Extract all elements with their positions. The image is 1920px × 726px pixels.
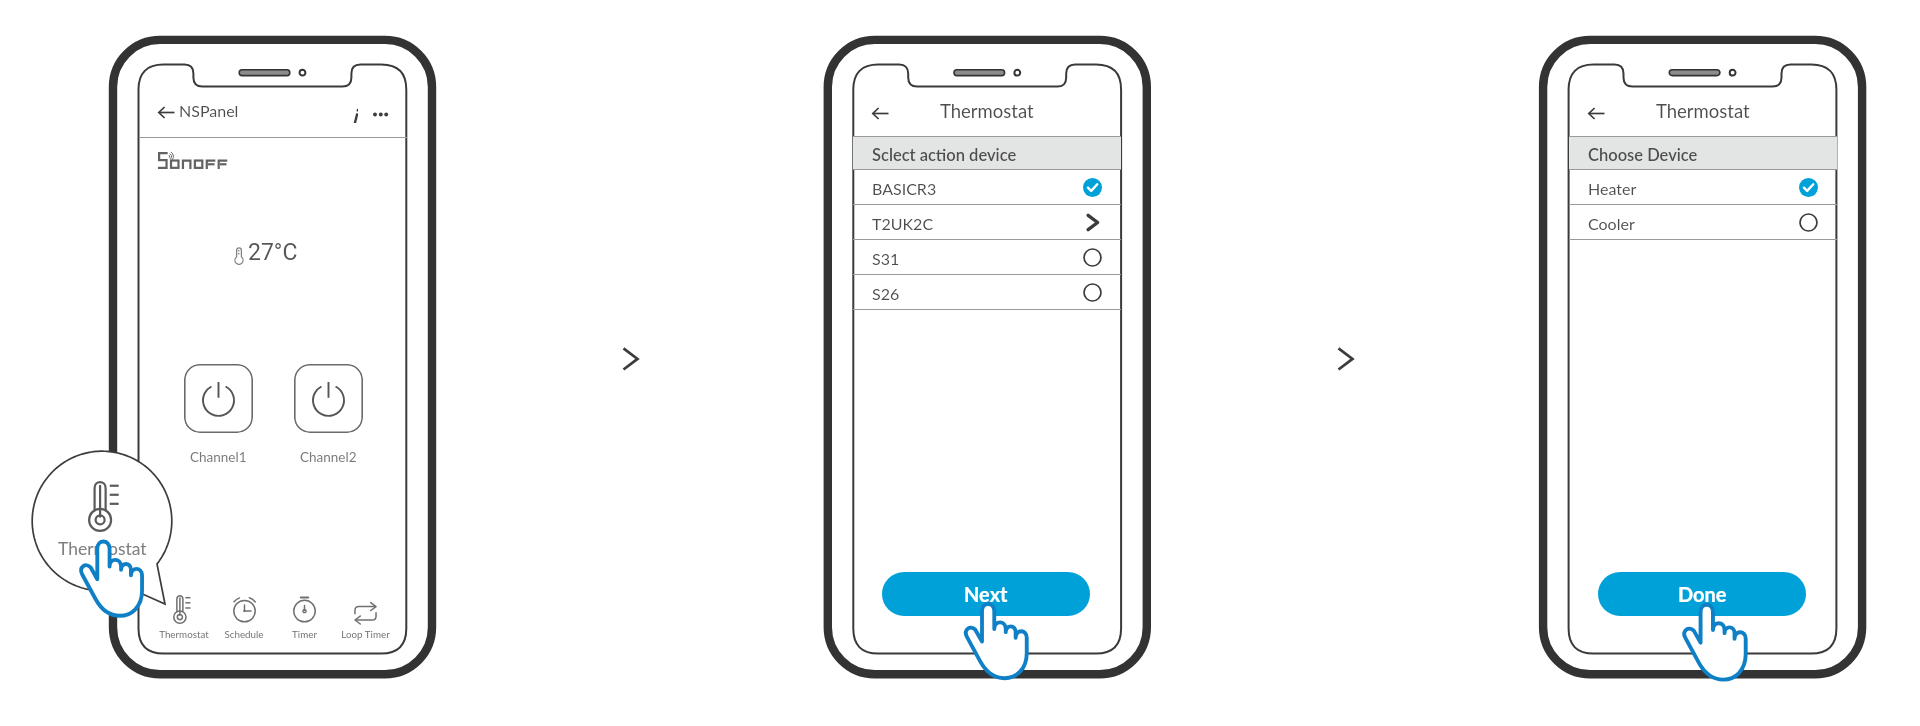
staticText: Sclect action device xyxy=(872,145,1017,165)
button[interactable]: Thermostat xyxy=(32,451,172,591)
staticText: Timer xyxy=(292,628,317,640)
button[interactable]: Timer xyxy=(274,595,335,651)
staticText: Thermostat xyxy=(159,628,209,640)
staticText: S26 xyxy=(872,284,900,303)
staticText: 27°C xyxy=(248,239,298,266)
button[interactable]: Done xyxy=(1598,572,1806,616)
button[interactable]: Next xyxy=(882,572,1090,616)
button[interactable]: Back xyxy=(872,107,889,120)
staticText: Schedule xyxy=(224,628,264,640)
staticText: Channel1 xyxy=(190,449,247,465)
staticText: Cooler xyxy=(1588,214,1635,233)
staticText: Thermostat xyxy=(940,100,1034,122)
button[interactable]: Info xyxy=(349,103,360,123)
staticText: Channel2 xyxy=(300,449,357,465)
button[interactable]: Thermostat xyxy=(154,595,214,651)
button[interactable]: Back xyxy=(1588,107,1605,120)
staticText: Choose Device xyxy=(1588,145,1698,165)
staticText: Next xyxy=(964,582,1008,606)
button[interactable]: T2UK2C xyxy=(853,205,1121,240)
button[interactable]: Loop Timer xyxy=(335,595,396,651)
button[interactable]: Power Channel1 xyxy=(184,364,253,433)
staticText: S31 xyxy=(872,249,900,268)
button[interactable]: Back xyxy=(158,106,175,119)
staticText: Done xyxy=(1678,582,1727,606)
button[interactable]: More options xyxy=(373,103,388,117)
staticText: i xyxy=(352,103,358,123)
button[interactable]: BASICR3 xyxy=(853,170,1121,205)
staticText: T2UK2C xyxy=(872,214,934,233)
staticText: NSPanel xyxy=(179,101,239,120)
staticText: Heater xyxy=(1588,179,1637,198)
staticText: BASICR3 xyxy=(872,179,937,198)
staticText: Loop Timer xyxy=(341,628,390,640)
button[interactable]: Cooler xyxy=(1569,205,1837,240)
button[interactable]: Power Channel2 xyxy=(294,364,363,433)
button[interactable]: S31 xyxy=(853,240,1121,275)
button[interactable]: Schedule xyxy=(214,595,274,651)
button[interactable]: Heater xyxy=(1569,170,1837,205)
staticText: Thermostat xyxy=(1656,100,1750,122)
button[interactable]: S26 xyxy=(853,275,1121,310)
staticText: Thermostat xyxy=(58,538,147,559)
